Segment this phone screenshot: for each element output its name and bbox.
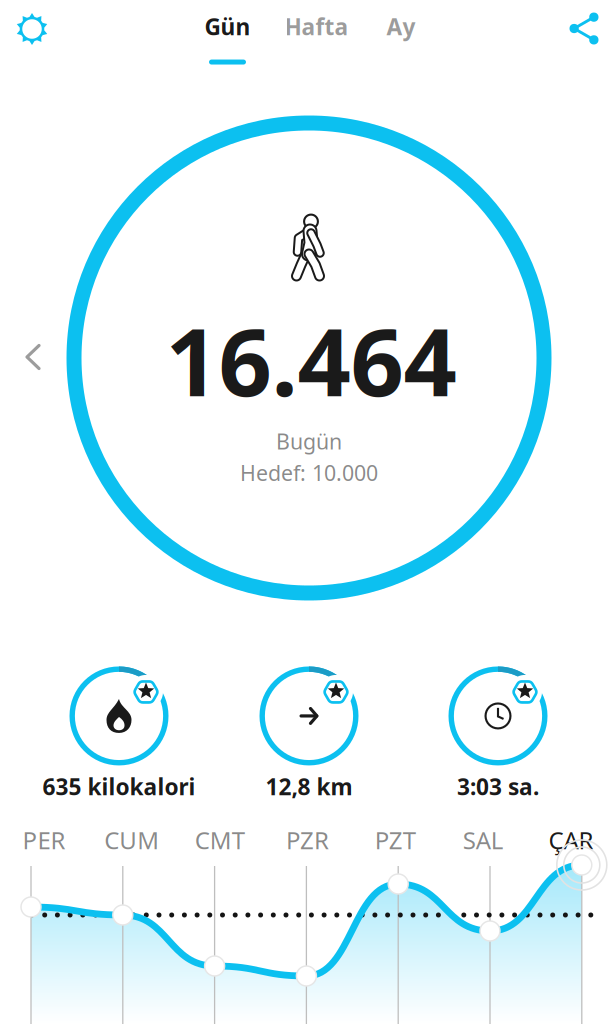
button[interactable]: Ay	[378, 11, 423, 64]
staticText: PZR	[286, 824, 329, 856]
button[interactable]: Previous day	[8, 327, 57, 386]
staticText: 635 kilokalori	[42, 771, 195, 801]
button[interactable]: Hafta	[280, 11, 352, 64]
button[interactable]: 3:03 sa.	[448, 666, 547, 801]
staticText: CUM	[104, 824, 159, 856]
staticText: SAL	[463, 824, 504, 856]
button[interactable]: Share	[553, 0, 615, 57]
staticText: PER	[22, 824, 65, 856]
button[interactable]: Gün	[200, 11, 254, 64]
button[interactable]: 635 kilokalori	[42, 666, 195, 801]
button[interactable]: 12,8 km	[259, 666, 358, 801]
staticText: Gün	[204, 11, 250, 41]
staticText: Bugün	[276, 427, 342, 455]
staticText: 3:03 sa.	[457, 771, 539, 801]
button[interactable]: Settings	[0, 0, 64, 58]
staticText: ÇAR	[549, 824, 594, 856]
staticText: Ay	[386, 11, 415, 41]
staticText: Hedef: 10.000	[240, 458, 378, 487]
staticText: CMT	[195, 824, 245, 856]
staticText: Hafta	[284, 11, 348, 41]
staticText: PZT	[375, 824, 416, 856]
staticText: 16.464	[165, 298, 456, 422]
staticText: 12,8 km	[265, 771, 352, 801]
